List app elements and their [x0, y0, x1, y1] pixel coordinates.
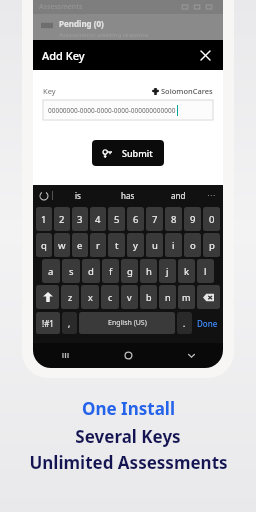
staticText: ⋯ — [207, 191, 215, 200]
button[interactable]: d — [82, 259, 100, 283]
staticText: 3 — [77, 213, 83, 226]
button[interactable]: 8 — [165, 207, 182, 231]
button[interactable]: r — [90, 233, 106, 257]
button[interactable]: Close — [196, 46, 214, 64]
staticText: 4 — [95, 213, 101, 226]
button[interactable]: m — [178, 285, 195, 309]
staticText: 5 — [114, 213, 120, 226]
staticText: z — [68, 291, 73, 303]
staticText: e — [77, 239, 83, 252]
button[interactable]: Home — [97, 343, 160, 368]
staticText: Assessments awaiting response — [59, 31, 149, 39]
button[interactable]: Recents — [33, 343, 97, 368]
staticText: Add Key — [42, 48, 85, 63]
button[interactable]: 7 — [146, 207, 163, 231]
button[interactable]: English (US) — [79, 312, 175, 334]
staticText: u — [152, 239, 158, 252]
button[interactable]: a — [42, 259, 60, 283]
staticText: k — [184, 265, 190, 278]
staticText: Submit — [122, 147, 153, 159]
staticText: q — [41, 239, 47, 252]
button[interactable]: Backspace — [197, 285, 220, 309]
button[interactable]: 9 — [184, 207, 201, 231]
staticText: 9 — [190, 213, 196, 226]
staticText: d — [88, 265, 94, 278]
button[interactable]: Hide keyboard — [160, 343, 223, 368]
staticText: l — [204, 265, 207, 278]
button[interactable]: q — [36, 233, 52, 257]
staticText: h — [146, 265, 152, 278]
staticText: . — [183, 318, 186, 329]
button[interactable]: h — [140, 259, 157, 283]
staticText: 8 — [171, 213, 177, 226]
button[interactable]: v — [121, 285, 138, 309]
staticText: r — [96, 239, 100, 252]
staticText: 6 — [133, 213, 139, 226]
button[interactable]: x — [81, 285, 99, 309]
button[interactable]: Shift — [36, 285, 59, 309]
button[interactable]: !#1 — [36, 312, 60, 334]
staticText: f — [109, 265, 113, 278]
staticText: Assessments — [39, 2, 83, 12]
staticText: o — [190, 239, 196, 252]
button[interactable]: z — [61, 285, 79, 309]
staticText: Done — [197, 318, 218, 329]
button[interactable]: 3 — [72, 207, 88, 231]
staticText: s — [69, 265, 74, 278]
staticText: !#1 — [42, 318, 54, 329]
button[interactable]: c — [101, 285, 119, 309]
button[interactable]: has — [103, 185, 153, 206]
button[interactable]: i — [165, 233, 182, 257]
button[interactable]: 6 — [127, 207, 144, 231]
other: Action — [193, 3, 201, 11]
button[interactable]: b — [140, 285, 157, 309]
staticText: c — [108, 291, 113, 303]
staticText: w — [58, 239, 66, 252]
staticText: v — [127, 291, 132, 303]
button[interactable]: . — [177, 312, 192, 334]
staticText: 00000000-0000-0000-0000-000000000000 — [48, 106, 176, 115]
button[interactable]: is — [53, 185, 103, 206]
button[interactable]: o — [184, 233, 201, 257]
staticText: Unlimited Assessments — [29, 451, 228, 474]
button[interactable]: l — [197, 259, 214, 283]
button[interactable]: t — [108, 233, 125, 257]
staticText: has — [121, 190, 135, 201]
button[interactable]: Submit — [92, 140, 164, 166]
button[interactable]: w — [54, 233, 70, 257]
button[interactable]: More suggestions — [203, 185, 219, 206]
button[interactable]: j — [159, 259, 176, 283]
button[interactable]: , — [62, 312, 77, 334]
staticText: , — [68, 318, 71, 329]
button[interactable]: g — [121, 259, 138, 283]
other: Action — [181, 3, 189, 11]
button[interactable]: n — [159, 285, 176, 309]
staticText: 2 — [59, 213, 65, 226]
button[interactable]: Voice input — [37, 189, 50, 202]
button[interactable]: 1 — [36, 207, 52, 231]
button[interactable]: 5 — [108, 207, 125, 231]
button[interactable]: and — [153, 185, 203, 206]
button[interactable]: 4 — [90, 207, 106, 231]
button[interactable]: 00000000-0000-0000-0000-000000000000 — [43, 100, 213, 120]
button[interactable]: e — [72, 233, 88, 257]
staticText: g — [127, 265, 133, 278]
button[interactable]: y — [127, 233, 144, 257]
button[interactable]: 0 — [203, 207, 220, 231]
button[interactable]: Done — [194, 312, 220, 334]
staticText: is — [75, 190, 81, 201]
button[interactable]: f — [102, 259, 119, 283]
staticText: b — [146, 291, 152, 303]
staticText: p — [209, 239, 215, 252]
button[interactable]: 2 — [54, 207, 70, 231]
staticText: m — [182, 291, 191, 303]
button[interactable]: s — [62, 259, 80, 283]
staticText: One Install — [82, 397, 175, 420]
button[interactable]: u — [146, 233, 163, 257]
staticText: 7 — [152, 213, 158, 226]
staticText: j — [166, 265, 169, 278]
staticText: Pending (0) — [59, 18, 104, 29]
staticText: and — [171, 190, 186, 201]
button[interactable]: p — [203, 233, 220, 257]
button[interactable]: k — [178, 259, 195, 283]
